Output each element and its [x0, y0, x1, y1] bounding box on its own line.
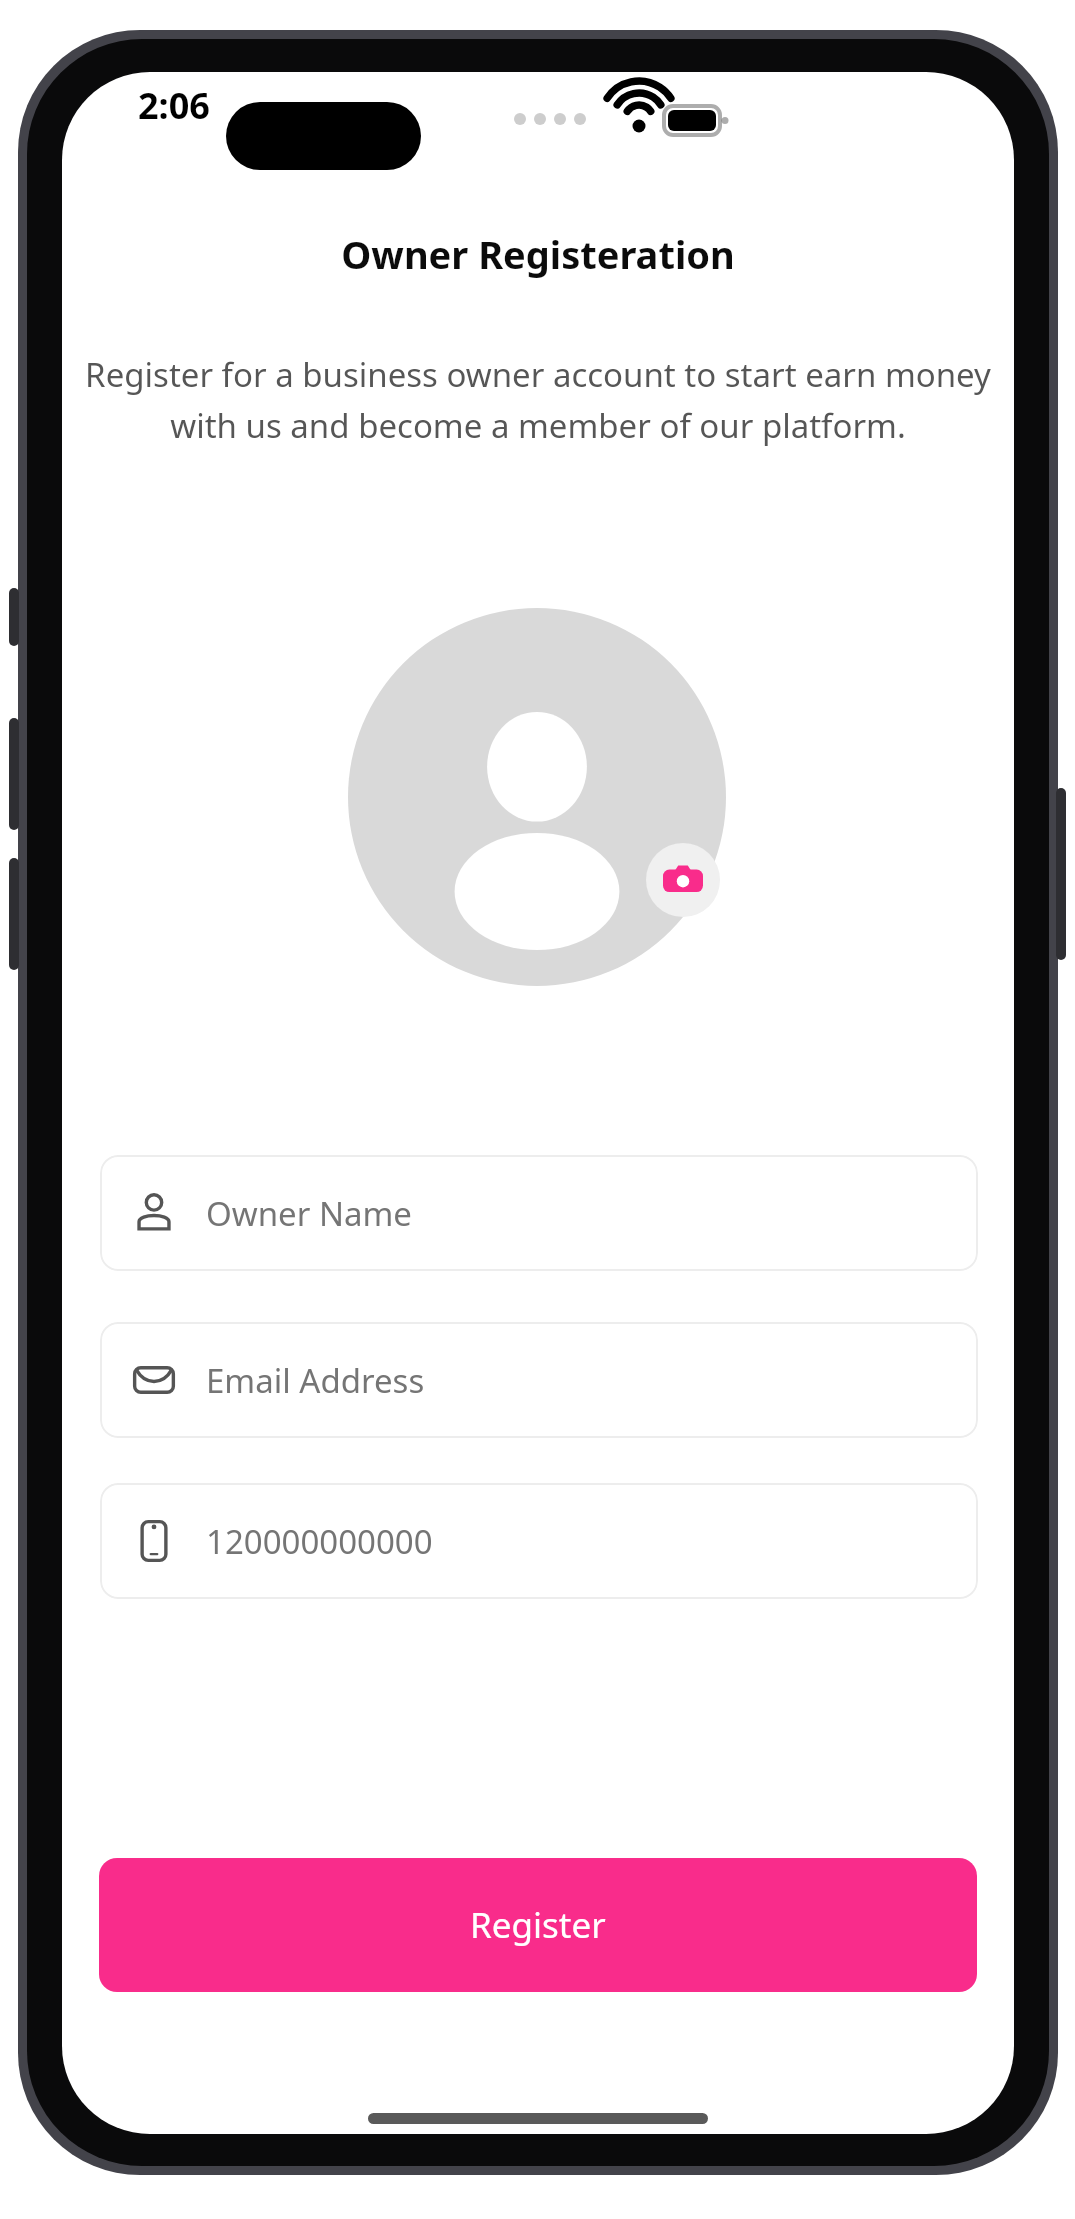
button[interactable]: Change photo: [646, 843, 720, 917]
staticText: Owner Registeration: [62, 228, 1014, 280]
button[interactable]: Email Address: [100, 1322, 978, 1438]
staticText: Email Address: [206, 1358, 425, 1403]
staticText: 120000000000: [206, 1519, 433, 1564]
staticText: Register for a business owner account to…: [78, 352, 998, 448]
button[interactable]: Owner Name: [100, 1155, 978, 1271]
button[interactable]: Profile photo: [348, 608, 726, 986]
staticText: Register: [470, 1901, 606, 1949]
staticText: Owner Name: [206, 1191, 412, 1236]
button[interactable]: Register: [99, 1858, 977, 1992]
staticText: 2:06: [138, 81, 210, 130]
button[interactable]: 120000000000: [100, 1483, 978, 1599]
